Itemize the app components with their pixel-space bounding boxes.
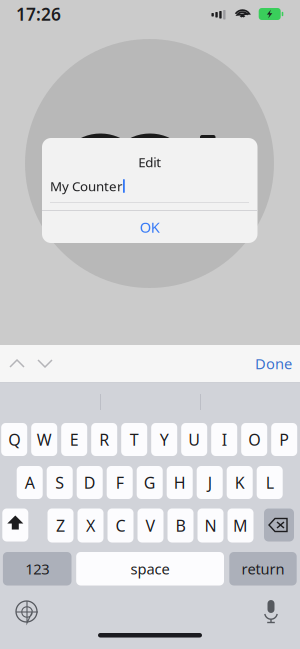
button[interactable]: Delete: [264, 508, 294, 541]
staticText: Done: [255, 354, 292, 373]
staticText: L: [266, 472, 274, 493]
button[interactable]: OK: [42, 211, 257, 243]
staticText: W: [37, 429, 52, 450]
button[interactable]: E: [61, 423, 87, 456]
button[interactable]: I: [211, 423, 237, 456]
staticText: R: [99, 429, 109, 450]
button[interactable]: F: [107, 466, 133, 499]
button[interactable]: Z: [47, 508, 73, 542]
button[interactable]: Shift: [2, 508, 28, 541]
button[interactable]: Y: [151, 423, 177, 456]
button[interactable]: Done: [255, 354, 292, 373]
staticText: My Counter: [50, 177, 123, 195]
staticText: Q: [8, 429, 20, 450]
staticText: K: [235, 472, 245, 493]
button[interactable]: H: [167, 466, 193, 499]
button[interactable]: L: [257, 466, 283, 499]
button[interactable]: P: [271, 423, 297, 456]
staticText: T: [130, 429, 139, 450]
button[interactable]: S: [47, 466, 73, 499]
staticText: 17:26: [16, 2, 61, 25]
button[interactable]: 123: [3, 552, 71, 585]
staticText: B: [175, 515, 185, 536]
staticText: C: [115, 515, 125, 536]
button[interactable]: Dictation: [262, 600, 280, 623]
staticText: J: [208, 472, 212, 493]
staticText: Edit: [138, 153, 161, 171]
button[interactable]: T: [121, 423, 147, 456]
staticText: Z: [56, 515, 65, 536]
staticText: Y: [160, 429, 169, 450]
staticText: S: [55, 472, 64, 493]
button[interactable]: D: [77, 466, 103, 499]
button[interactable]: space: [76, 552, 224, 585]
button[interactable]: Q: [1, 423, 27, 456]
staticText: P: [279, 429, 289, 450]
button[interactable]: Next field: [36, 355, 54, 371]
button[interactable]: J: [197, 466, 223, 499]
button[interactable]: W: [31, 423, 57, 456]
button[interactable]: Next keyboard: [16, 601, 37, 622]
button[interactable]: K: [227, 466, 253, 499]
button[interactable]: A: [17, 466, 43, 499]
button[interactable]: M: [227, 508, 253, 542]
staticText: U: [188, 429, 200, 450]
staticText: O: [248, 429, 260, 450]
button[interactable]: U: [181, 423, 207, 456]
button[interactable]: B: [167, 508, 193, 542]
staticText: M: [233, 515, 248, 536]
staticText: F: [116, 472, 124, 493]
staticText: V: [145, 515, 155, 536]
staticText: E: [70, 429, 79, 450]
button[interactable]: X: [77, 508, 103, 542]
staticText: A: [25, 472, 35, 493]
button[interactable]: N: [197, 508, 223, 542]
button[interactable]: Previous field: [8, 355, 26, 371]
staticText: D: [84, 472, 96, 493]
staticText: G: [144, 472, 156, 493]
staticText: return: [241, 559, 284, 578]
staticText: H: [174, 472, 186, 493]
button[interactable]: G: [137, 466, 163, 499]
button[interactable]: return: [229, 552, 297, 585]
button[interactable]: V: [137, 508, 163, 542]
button[interactable]: C: [107, 508, 133, 542]
button[interactable]: O: [241, 423, 267, 456]
staticText: I: [222, 429, 227, 450]
staticText: space: [131, 559, 170, 578]
staticText: 123: [25, 559, 49, 578]
staticText: N: [204, 515, 216, 536]
staticText: OK: [140, 217, 160, 237]
button[interactable]: R: [91, 423, 117, 456]
staticText: X: [86, 515, 95, 536]
